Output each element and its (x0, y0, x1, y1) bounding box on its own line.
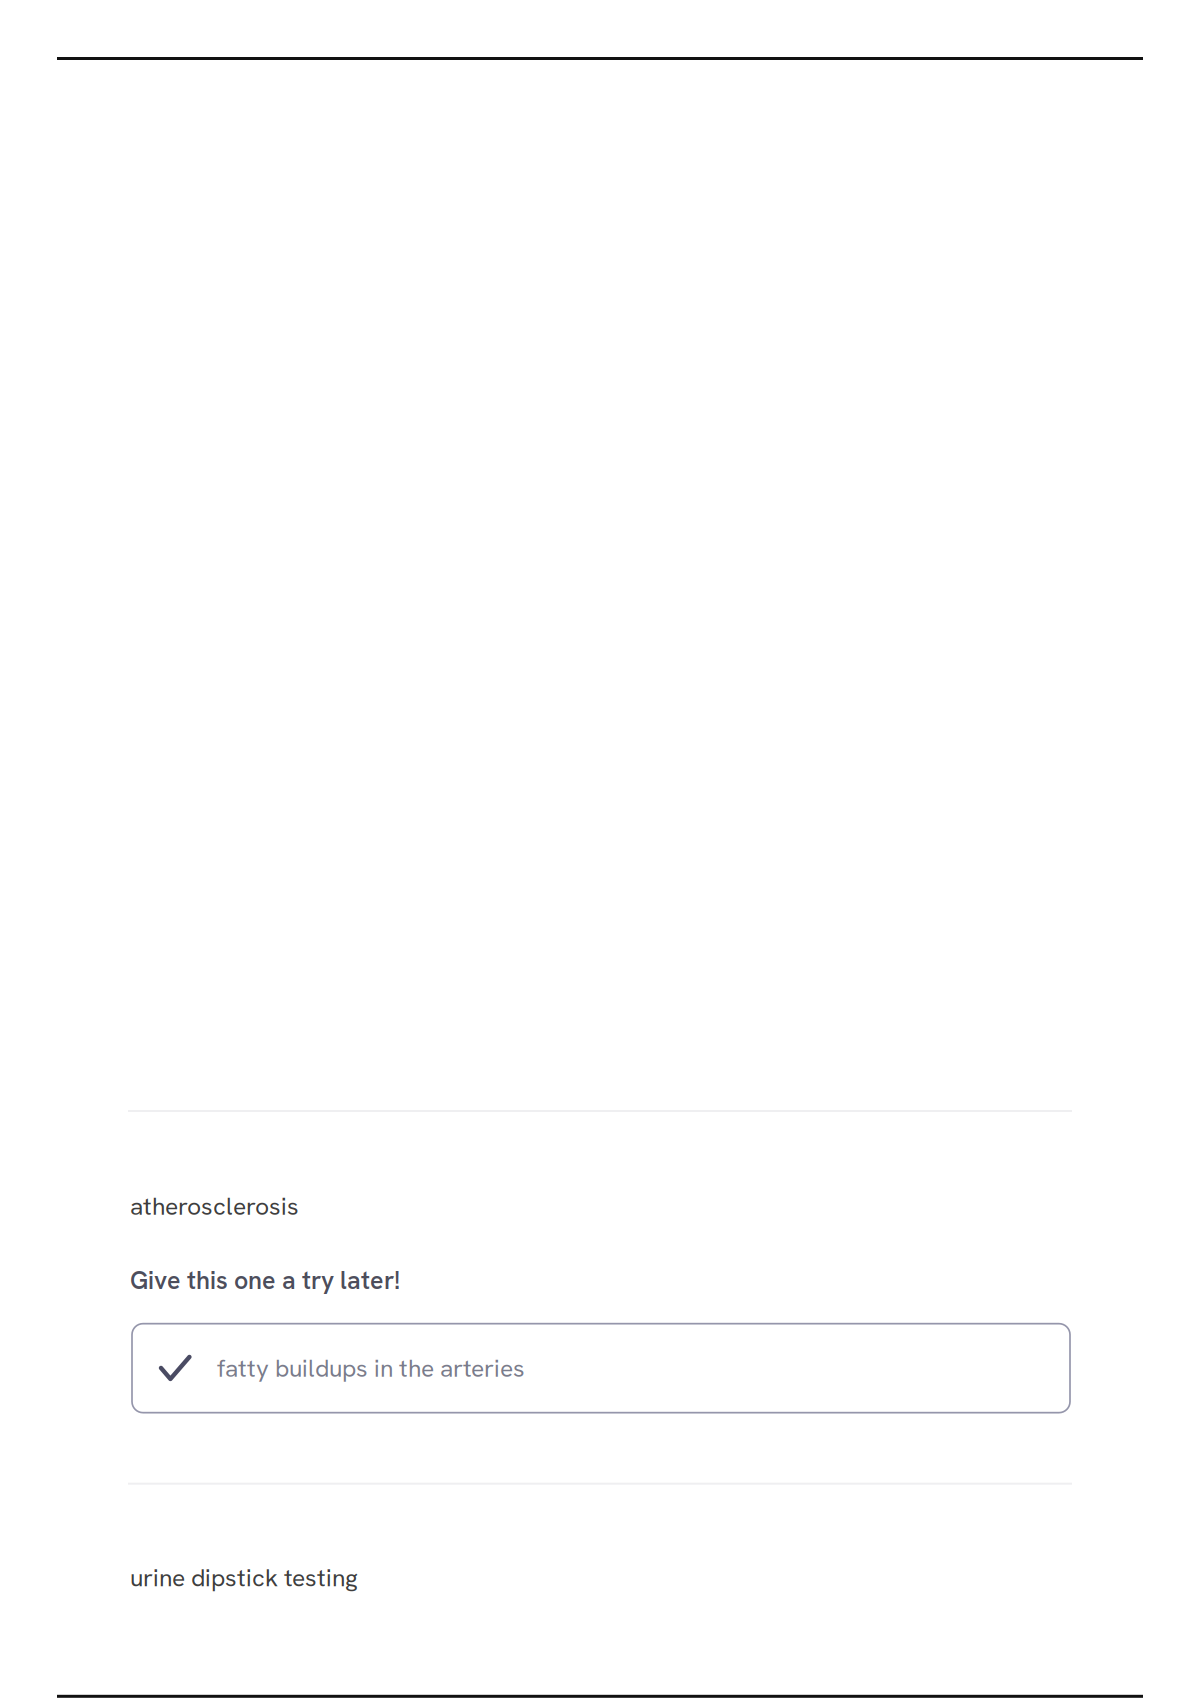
staticText: fatty buildups in the arteries (217, 1352, 525, 1384)
staticText: Give this one a try later! (130, 1264, 400, 1297)
staticText: atherosclerosis (130, 1190, 299, 1222)
button[interactable]: fatty buildups in the arteries (132, 1324, 1070, 1413)
staticText: urine dipstick testing (130, 1562, 358, 1594)
